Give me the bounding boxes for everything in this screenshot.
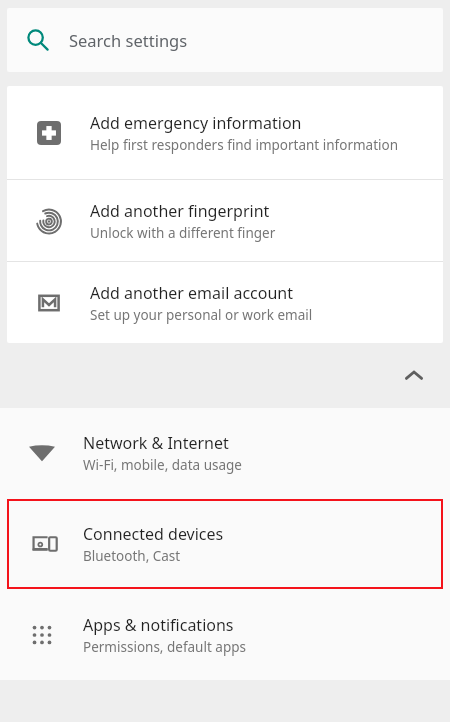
staticText: Help first responders find important inf…	[90, 136, 399, 154]
staticText: Search settings	[69, 29, 188, 51]
staticText: Connected devices	[83, 523, 224, 545]
button[interactable]: Collapse suggestions	[392, 354, 436, 398]
staticText: Bluetooth, Cast	[83, 547, 181, 565]
button[interactable]: Connected devices	[7, 499, 443, 589]
staticText: Set up your personal or work email	[90, 306, 313, 324]
staticText: Add another fingerprint	[90, 200, 270, 222]
button[interactable]: Add another email account	[7, 262, 443, 343]
staticText: Wi-Fi, mobile, data usage	[83, 456, 242, 474]
staticText: Permissions, default apps	[83, 638, 246, 656]
staticText: Unlock with a different finger	[90, 224, 276, 242]
button[interactable]: Add emergency information	[7, 86, 443, 179]
button[interactable]: Add another fingerprint	[7, 180, 443, 261]
staticText: Network & Internet	[83, 432, 229, 454]
staticText: Add emergency information	[90, 112, 302, 134]
button[interactable]: Network & Internet	[0, 408, 450, 498]
staticText: Add another email account	[90, 282, 294, 304]
button[interactable]: Apps & notifications	[0, 590, 450, 680]
staticText: Apps & notifications	[83, 614, 234, 636]
button[interactable]: Search settings	[7, 8, 443, 72]
